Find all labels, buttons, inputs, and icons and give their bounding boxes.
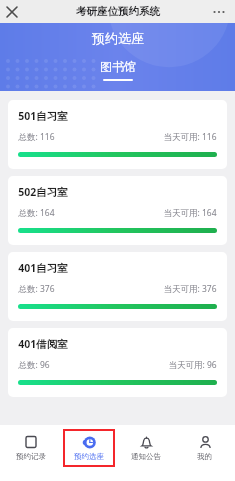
staticText: 总数: 164: [18, 207, 55, 219]
staticText: 我的: [197, 452, 212, 461]
button[interactable]: 502自习室: [8, 176, 227, 245]
staticText: 总数: 376: [18, 283, 55, 295]
staticText: 501自习室: [18, 109, 68, 123]
button[interactable]: Close: [4, 4, 20, 20]
staticText: 图书馆: [100, 59, 136, 74]
button[interactable]: 501自习室: [8, 100, 227, 169]
staticText: 总数: 96: [18, 359, 50, 371]
button[interactable]: 预约选座: [63, 429, 115, 467]
button[interactable]: 401借阅室: [8, 328, 227, 397]
button[interactable]: 我的: [178, 429, 230, 467]
staticText: 总数: 116: [18, 131, 55, 143]
staticText: 401借阅室: [18, 337, 68, 351]
staticText: 当天可用: 116: [163, 131, 217, 143]
staticText: 当天可用: 376: [163, 283, 217, 295]
button[interactable]: More options: [209, 4, 229, 20]
staticText: 401自习室: [18, 261, 68, 275]
staticText: 通知公告: [131, 452, 161, 461]
staticText: 当天可用: 164: [163, 207, 217, 219]
button[interactable]: 通知公告: [120, 429, 172, 467]
staticText: 当天可用: 96: [168, 359, 217, 371]
staticText: 预约选座: [92, 30, 144, 46]
staticText: 502自习室: [18, 185, 68, 199]
staticText: 预约选座: [74, 452, 104, 461]
staticText: 考研座位预约系统: [76, 5, 160, 18]
button[interactable]: 401自习室: [8, 252, 227, 321]
button[interactable]: 预约记录: [5, 429, 57, 467]
staticText: 预约记录: [16, 452, 46, 461]
button[interactable]: 图书馆: [100, 59, 136, 81]
